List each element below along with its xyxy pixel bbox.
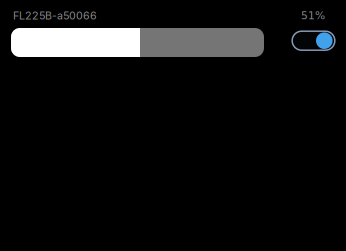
button[interactable]: Enable [291, 30, 336, 51]
staticText: FL225B-a50066 [13, 9, 97, 22]
staticText: 51% [301, 9, 325, 22]
